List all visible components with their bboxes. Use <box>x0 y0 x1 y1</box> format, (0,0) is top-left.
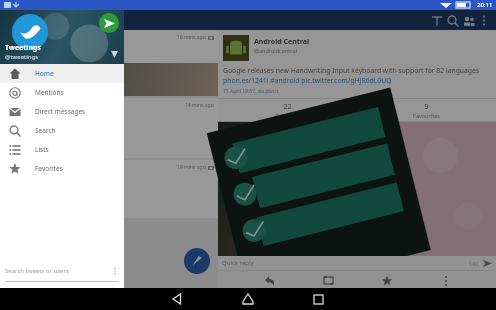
staticText: phon.es/1241i #android pic.twitter.com/g… <box>223 76 392 85</box>
staticText: 22 <box>283 102 292 112</box>
button[interactable]: Favourite <box>378 272 394 288</box>
staticText: 19 mins ago <box>177 164 206 171</box>
staticText: Lists <box>35 145 49 154</box>
button[interactable]: 14 mins ago <box>0 98 218 158</box>
staticText: Quick reply <box>222 259 469 267</box>
staticText: 14 mins ago <box>185 102 214 109</box>
staticText: Favourites <box>413 112 440 119</box>
button[interactable]: Direct messages <box>0 102 124 121</box>
staticText: Retweets <box>275 112 299 119</box>
staticText: 20:11 <box>477 1 493 9</box>
staticText: Google releases new Handwriting Input ke… <box>223 66 480 75</box>
staticText: @androidcentral <box>254 47 297 54</box>
button[interactable]: More options <box>476 12 492 28</box>
button[interactable]: 19 mins ago <box>0 160 218 218</box>
staticText: Android Central <box>254 37 310 47</box>
staticText: 140 <box>469 260 479 267</box>
button[interactable]: Compose text <box>428 12 444 28</box>
staticText: acon and want #android 5.1 <box>5 111 91 120</box>
staticText: Home <box>35 69 54 78</box>
button[interactable]: Back <box>143 288 213 310</box>
staticText: Favorites <box>35 164 63 173</box>
staticText: keyboard with support for <box>5 43 85 52</box>
button[interactable]: Search <box>0 121 124 140</box>
button[interactable]: 22 <box>218 99 356 121</box>
button[interactable]: Favorites <box>0 159 124 178</box>
button[interactable]: Recent apps <box>283 288 353 310</box>
staticText: pic.twitter.com/gHJR6dL0UQ <box>5 53 92 62</box>
button[interactable]: Quick reply <box>222 256 492 270</box>
staticText: Search <box>35 126 56 135</box>
staticText: @tweetings <box>5 53 39 61</box>
staticText: Mentions <box>35 88 64 97</box>
button[interactable]: Search tweets or users <box>5 261 119 281</box>
button[interactable]: Home <box>0 64 124 83</box>
button[interactable]: More actions <box>437 272 453 288</box>
button[interactable]: Reply <box>261 272 277 288</box>
button[interactable]: Send <box>99 13 119 33</box>
button[interactable]: 9 <box>357 99 496 121</box>
button[interactable]: Retweet <box>320 272 336 288</box>
button[interactable]: Add people <box>460 12 476 28</box>
staticText: Tweetings <box>5 43 41 53</box>
button[interactable]: 16 mins ago <box>0 30 218 96</box>
button[interactable]: Account avatar <box>12 14 48 50</box>
staticText: Direct messages <box>35 107 86 116</box>
button[interactable]: Home <box>213 288 283 310</box>
button[interactable]: Compose tweet <box>184 248 210 274</box>
button[interactable]: Lists <box>0 140 124 159</box>
staticText: 9 <box>424 102 429 112</box>
staticText: Search tweets or users <box>5 267 111 275</box>
button[interactable]: Mentions <box>0 83 124 102</box>
staticText: d/oneplu... grab the latest <box>5 121 85 130</box>
button[interactable]: Search <box>444 12 460 28</box>
staticText: 16 mins ago <box>177 34 206 41</box>
staticText: 15 April 19:57, via dlvr.it <box>223 88 279 95</box>
